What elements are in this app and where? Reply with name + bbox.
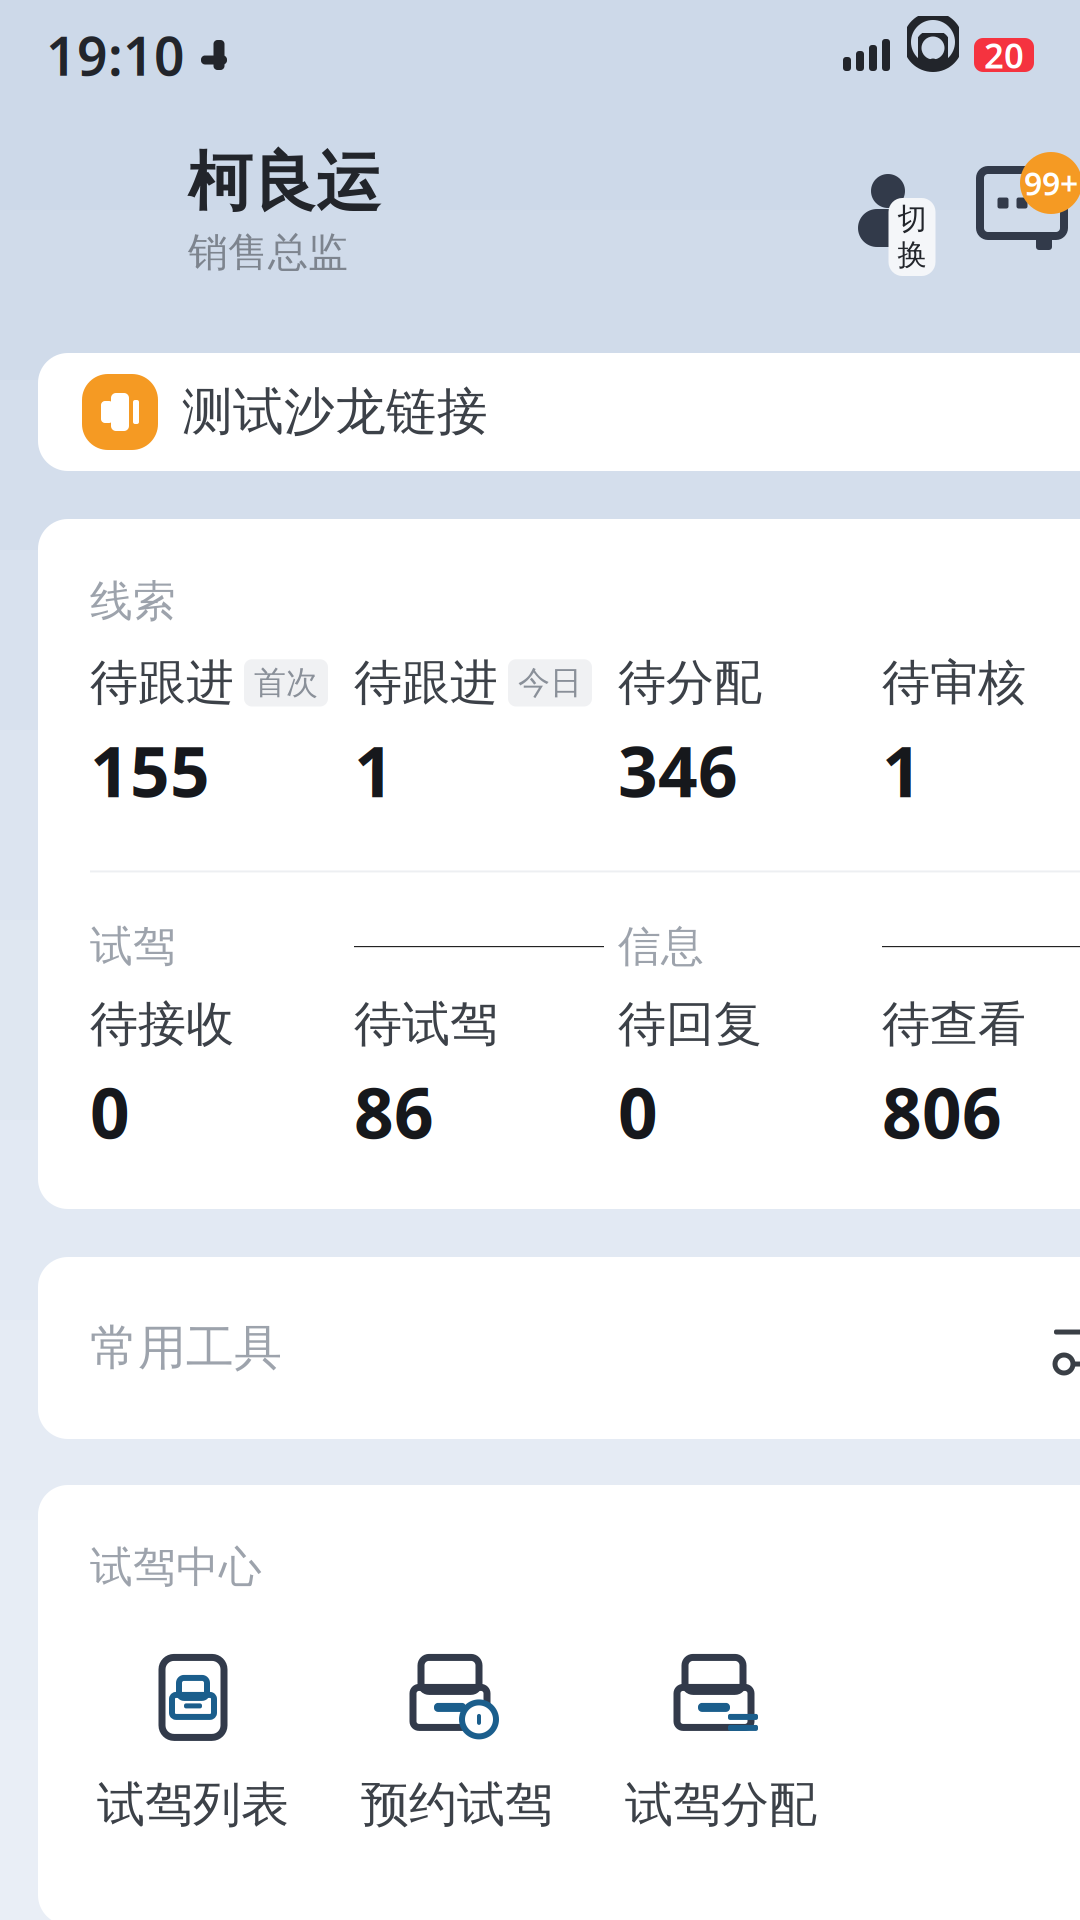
staticText: 0 — [618, 1066, 658, 1158]
button[interactable]: 待接收 — [90, 995, 340, 1158]
staticText: 信息 — [618, 920, 704, 973]
button[interactable]: 待试驾 — [354, 995, 604, 1158]
staticText: 切换 — [897, 201, 926, 273]
staticText: 试驾 — [90, 920, 176, 973]
button[interactable]: 消息 — [962, 160, 1080, 260]
button[interactable]: 切换账号 — [832, 162, 944, 258]
button[interactable]: 待跟进 — [354, 653, 604, 816]
staticText: 测试沙龙链接 — [182, 381, 488, 443]
staticText: 20 — [984, 32, 1024, 78]
staticText: 346 — [618, 724, 738, 816]
staticText: 86 — [354, 1066, 434, 1158]
staticText: 155 — [90, 724, 210, 816]
staticText: 待查看 — [882, 995, 1026, 1054]
staticText: 待接收 — [90, 995, 234, 1054]
staticText: 预约试驾 — [361, 1775, 553, 1834]
staticText: 待跟进 — [90, 653, 234, 712]
button[interactable]: 待审核 — [882, 653, 1080, 816]
staticText: 19:10 — [46, 20, 185, 90]
button[interactable]: 待查看 — [882, 995, 1080, 1158]
button[interactable]: 试驾列表 — [68, 1649, 318, 1834]
staticText: 试驾分配 — [625, 1775, 817, 1834]
staticText: 待审核 — [882, 653, 1026, 712]
staticText: 待回复 — [618, 995, 762, 1054]
staticText: 1 — [354, 724, 394, 816]
button[interactable]: 测试沙龙链接 — [38, 353, 1080, 471]
staticText: 试驾中心 — [90, 1541, 262, 1593]
staticText: 首次 — [254, 663, 318, 702]
button[interactable]: 待分配 — [618, 653, 868, 816]
staticText: 柯良运 — [188, 143, 380, 222]
button[interactable]: 待回复 — [618, 995, 868, 1158]
staticText: 线索 — [90, 575, 176, 627]
staticText: 待跟进 — [354, 653, 498, 712]
staticText: 今日 — [518, 663, 582, 702]
button[interactable]: 常用工具 — [38, 1257, 1080, 1439]
staticText: 待试驾 — [354, 995, 498, 1054]
staticText: 0 — [90, 1066, 130, 1158]
staticText: 806 — [882, 1066, 1002, 1158]
button[interactable]: 试驾分配 — [596, 1649, 846, 1834]
staticText: 销售总监 — [188, 228, 348, 277]
staticText: 常用工具 — [90, 1318, 282, 1377]
staticText: 试驾列表 — [97, 1775, 289, 1834]
button[interactable]: 待跟进 — [90, 653, 340, 816]
staticText: 1 — [882, 724, 922, 816]
button[interactable]: 预约试驾 — [332, 1649, 582, 1834]
staticText: 99+ — [1024, 162, 1078, 204]
staticText: 待分配 — [618, 653, 762, 712]
